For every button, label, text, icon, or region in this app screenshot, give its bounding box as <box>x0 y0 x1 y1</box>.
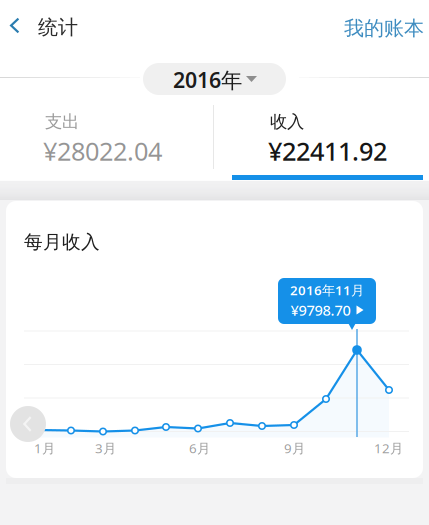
staticText: 统计 <box>38 15 78 40</box>
staticText: 6月 <box>189 439 210 457</box>
staticText: 2016年11月 <box>290 281 364 299</box>
button[interactable]: Back <box>10 406 46 442</box>
button[interactable]: 2016年 <box>143 63 286 95</box>
staticText: ¥9798.70 <box>290 300 350 320</box>
button[interactable]: 统计 <box>0 0 110 50</box>
staticText: 我的账本 <box>344 16 424 41</box>
staticText: 2016年 <box>173 65 242 94</box>
button[interactable]: 收入 <box>269 110 429 168</box>
button[interactable]: 我的账本 <box>333 0 429 50</box>
staticText: 3月 <box>95 439 116 457</box>
staticText: 收入 <box>270 111 304 132</box>
staticText: 1月 <box>34 439 55 457</box>
staticText: ¥28022.04 <box>43 134 162 168</box>
button[interactable]: 支出 <box>44 110 224 168</box>
staticText: 每月收入 <box>24 230 100 253</box>
staticText: 12月 <box>374 439 403 457</box>
staticText: 9月 <box>284 439 305 457</box>
staticText: 支出 <box>45 111 79 132</box>
staticText: ¥22411.92 <box>268 134 387 168</box>
